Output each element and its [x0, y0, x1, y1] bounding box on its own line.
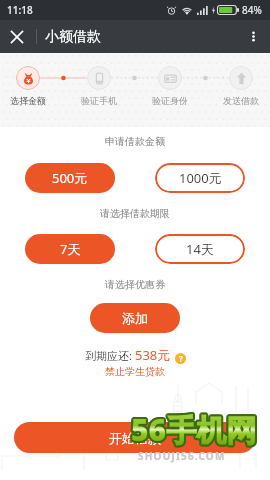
staticText: 验证身份 [152, 95, 188, 106]
button[interactable]: 1000元 [155, 163, 245, 193]
button[interactable]: 开始借款 [14, 422, 256, 453]
staticText: 56手机网 [133, 410, 259, 451]
staticText: 添加 [122, 310, 148, 326]
staticText: 56手机网 [133, 408, 259, 449]
staticText: 小额借款 [45, 28, 101, 46]
staticText: 到期应还: [85, 348, 135, 363]
staticText: 56手机网 [130, 411, 256, 452]
staticText: 56手机网 [129, 409, 255, 450]
staticText: 申请借款金额 [0, 135, 270, 148]
button[interactable]: 验证手机 [69, 66, 129, 106]
button[interactable]: 选择金额 [0, 66, 58, 106]
button[interactable]: 14天 [155, 234, 245, 264]
staticText: 56手机网 [131, 411, 257, 452]
staticText: 56手机网 [132, 410, 258, 451]
staticText: 1000元 [179, 169, 222, 187]
button[interactable]: Close [0, 20, 33, 53]
staticText: 56手机网 [129, 410, 255, 451]
staticText: 请选择借款期限 [0, 207, 270, 220]
staticText: 开始借款 [109, 430, 161, 446]
staticText: 56手机网 [130, 409, 256, 450]
button[interactable]: 7天 [25, 234, 115, 264]
staticText: 7天 [60, 240, 81, 258]
staticText: 56手机网 [130, 407, 256, 448]
staticText: 56手机网 [131, 409, 257, 450]
staticText: 14天 [186, 240, 214, 258]
staticText: SHOUJI56.COM [138, 449, 226, 463]
button[interactable]: Help [175, 353, 186, 364]
staticText: 56手机网 [131, 407, 257, 448]
staticText: 请选择优惠券 [0, 278, 270, 291]
staticText: 56手机网 [130, 408, 256, 449]
staticText: 56手机网 [131, 409, 257, 450]
staticText: 84% [242, 3, 262, 17]
staticText: 538元 [135, 346, 171, 364]
staticText: 验证手机 [81, 95, 117, 106]
staticText: 56手机网 [132, 407, 258, 448]
button[interactable]: More options [237, 20, 270, 53]
button[interactable]: 添加 [90, 303, 180, 333]
button[interactable]: 发送借款 [211, 66, 270, 106]
staticText: ? [179, 353, 183, 364]
staticText: 56手机网 [132, 411, 258, 452]
staticText: 发送借款 [223, 95, 259, 106]
button[interactable]: 验证身份 [140, 66, 200, 106]
button[interactable]: 500元 [25, 163, 115, 193]
staticText: 56手机网 [133, 409, 259, 450]
staticText: 56手机网 [132, 409, 258, 450]
staticText: 56手机网 [132, 408, 258, 449]
staticText: 56手机网 [131, 410, 257, 451]
staticText: 56手机网 [130, 410, 256, 451]
staticText: 56手机网 [131, 408, 257, 449]
staticText: 禁止学生贷款 [0, 365, 270, 378]
staticText: 500元 [52, 169, 88, 187]
staticText: 选择金额 [10, 95, 46, 106]
staticText: 11:18 [7, 3, 33, 17]
staticText: 56手机网 [129, 408, 255, 449]
